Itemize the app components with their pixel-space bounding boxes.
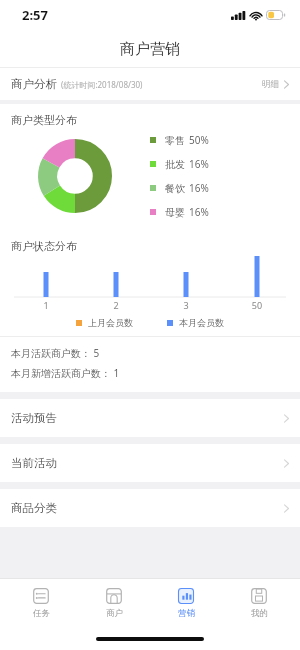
- staticText: 母婴: [165, 206, 185, 219]
- staticText: 商户: [106, 608, 123, 619]
- staticText: 上月会员数: [88, 317, 133, 328]
- staticText: 商品分类: [11, 501, 57, 515]
- staticText: 2: [104, 299, 128, 311]
- staticText: 商户分析: [11, 77, 57, 91]
- button[interactable]: 任务: [10, 579, 72, 627]
- staticText: 本月会员数: [179, 317, 224, 328]
- button[interactable]: 我的: [228, 579, 290, 627]
- button[interactable]: 商户分析: [0, 68, 300, 100]
- staticText: 50%: [189, 133, 209, 147]
- staticText: 3: [174, 299, 198, 311]
- staticText: 餐饮: [165, 182, 185, 195]
- button[interactable]: 商户: [83, 579, 145, 627]
- staticText: 2:57: [22, 6, 48, 24]
- button[interactable]: 营销: [155, 579, 217, 627]
- button[interactable]: 商品分类: [0, 489, 300, 527]
- button[interactable]: 活动预告: [0, 399, 300, 437]
- button[interactable]: 当前活动: [0, 444, 300, 482]
- staticText: 1: [34, 299, 58, 311]
- staticText: 50: [245, 299, 269, 311]
- staticText: (统计时间:2018/08/30): [61, 79, 143, 90]
- staticText: 我的: [251, 608, 268, 619]
- staticText: 本月新增活跃商户数： 1: [11, 366, 120, 380]
- staticText: 16%: [189, 181, 209, 195]
- staticText: 本月活跃商户数： 5: [11, 346, 100, 360]
- staticText: 明细: [262, 79, 279, 90]
- staticText: 任务: [33, 608, 50, 619]
- staticText: 商户类型分布: [11, 113, 77, 127]
- staticText: 活动预告: [11, 411, 57, 425]
- staticText: 商户营销: [120, 40, 180, 59]
- staticText: 商户状态分布: [11, 239, 77, 253]
- staticText: 当前活动: [11, 456, 57, 470]
- staticText: 零售: [165, 134, 185, 147]
- staticText: 16%: [189, 205, 209, 219]
- staticText: 批发: [165, 158, 185, 171]
- staticText: 营销: [178, 608, 195, 619]
- staticText: 16%: [189, 157, 209, 171]
